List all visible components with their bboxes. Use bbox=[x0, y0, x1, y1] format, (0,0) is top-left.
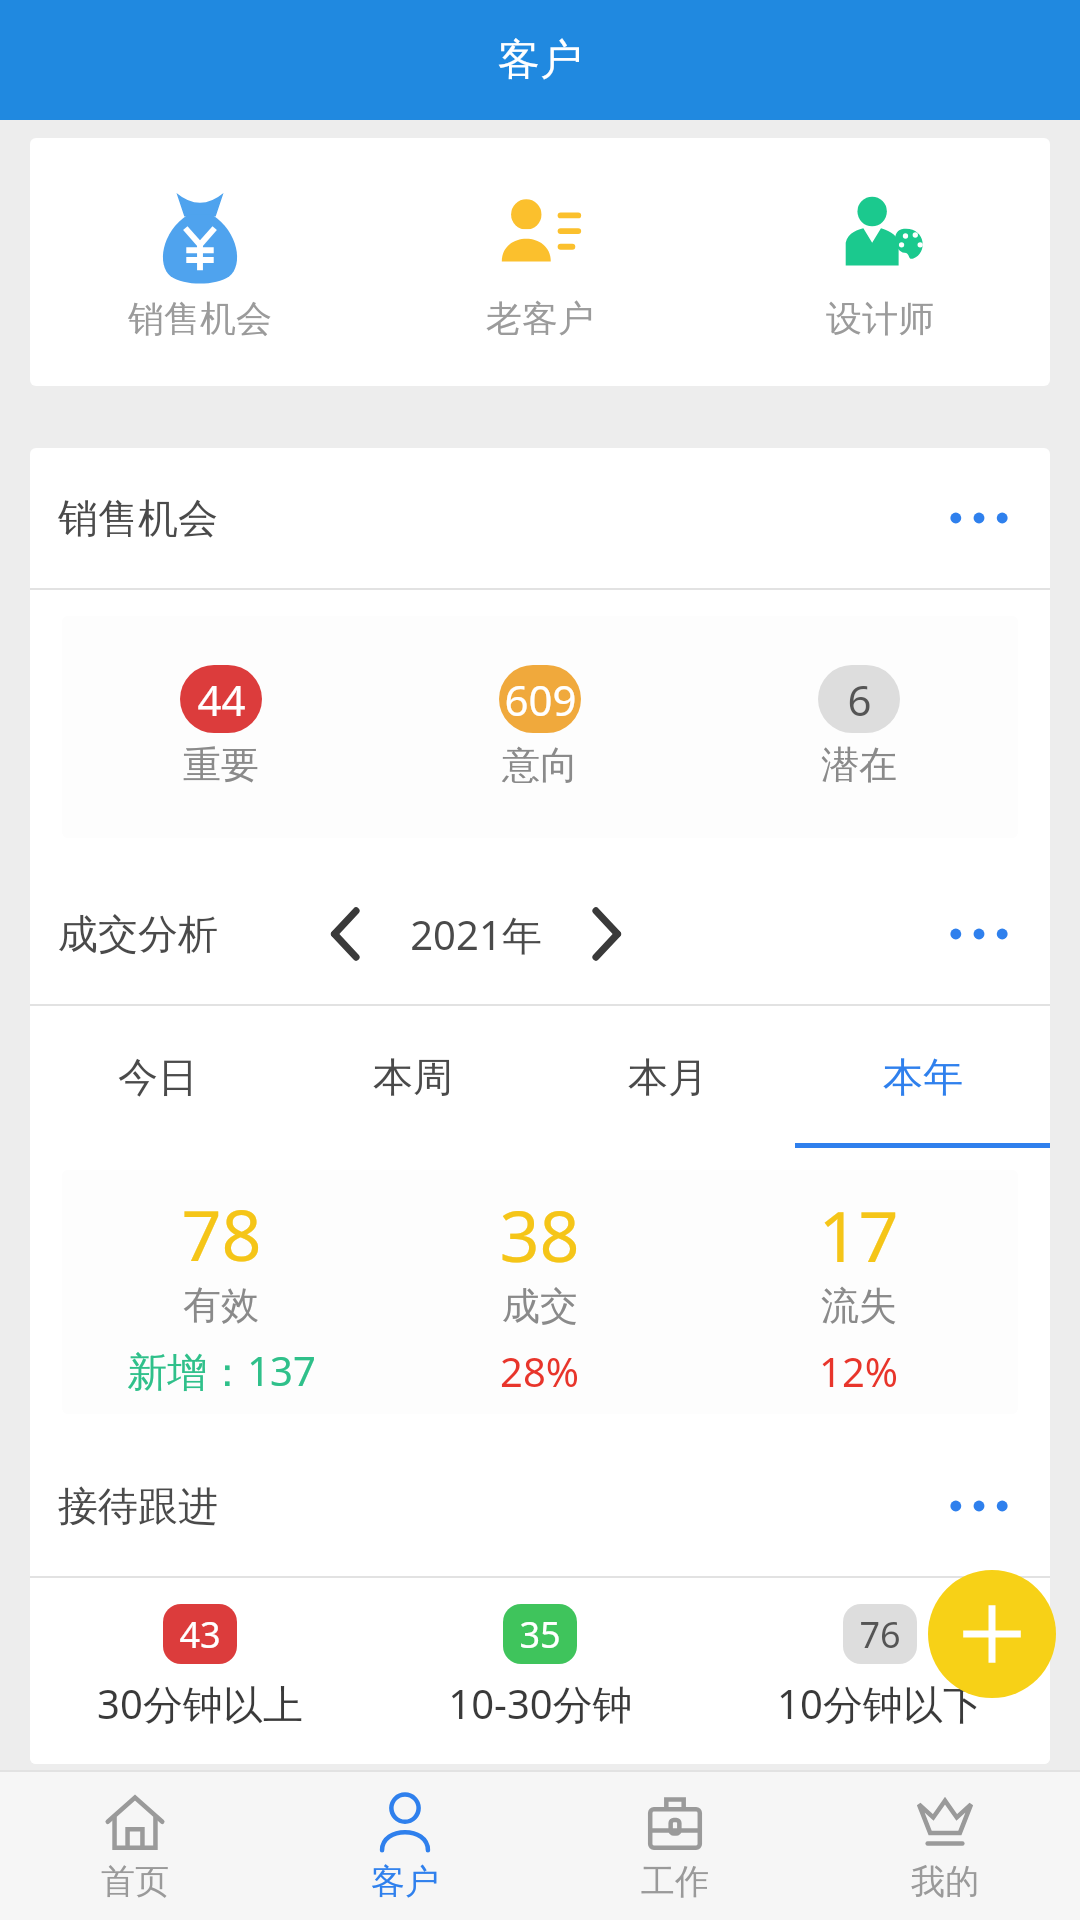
staticText: 30分钟以上 bbox=[97, 1676, 303, 1731]
staticText: 本年 bbox=[883, 1052, 963, 1102]
button[interactable]: 首页 bbox=[0, 1772, 270, 1920]
button[interactable]: 销售机会 bbox=[30, 448, 1050, 588]
button[interactable]: 更多 bbox=[936, 487, 1022, 549]
staticText: 2021年 bbox=[410, 907, 542, 962]
button[interactable]: 76 bbox=[710, 1604, 1050, 1731]
staticText: 成交 bbox=[502, 1282, 578, 1330]
button[interactable]: 609 bbox=[380, 665, 699, 789]
staticText: 本月 bbox=[628, 1052, 708, 1102]
staticText: 设计师 bbox=[826, 296, 934, 341]
staticText: 我的 bbox=[911, 1860, 979, 1903]
staticText: 重要 bbox=[183, 741, 259, 789]
staticText: 首页 bbox=[101, 1860, 169, 1903]
button[interactable]: 更多 bbox=[936, 1475, 1022, 1537]
staticText: 78 bbox=[181, 1186, 262, 1281]
staticText: 6 bbox=[847, 671, 872, 728]
button[interactable]: 43 bbox=[30, 1604, 370, 1731]
button[interactable]: 下一年 bbox=[570, 898, 642, 970]
button[interactable]: 本年 bbox=[795, 1006, 1050, 1148]
button[interactable]: 客户 bbox=[270, 1772, 540, 1920]
button[interactable]: 更多 bbox=[936, 903, 1022, 965]
staticText: 44 bbox=[197, 671, 246, 728]
button[interactable]: 78 bbox=[62, 1186, 380, 1398]
button[interactable]: 接待跟进 bbox=[30, 1436, 1050, 1576]
staticText: 成交分析 bbox=[58, 909, 218, 959]
staticText: 今日 bbox=[118, 1052, 198, 1102]
staticText: 流失 bbox=[821, 1282, 897, 1330]
staticText: 有效 bbox=[183, 1281, 259, 1329]
button[interactable]: 销售机会 bbox=[30, 138, 370, 386]
staticText: 17 bbox=[818, 1187, 899, 1282]
button[interactable]: 我的 bbox=[810, 1772, 1080, 1920]
staticText: 28% bbox=[500, 1344, 579, 1398]
button[interactable]: 老客户 bbox=[370, 138, 710, 386]
staticText: 客户 bbox=[371, 1860, 439, 1903]
staticText: 10-30分钟 bbox=[448, 1676, 633, 1731]
staticText: 接待跟进 bbox=[58, 1481, 218, 1531]
button[interactable]: 44 bbox=[62, 665, 380, 789]
staticText: 12% bbox=[819, 1344, 898, 1398]
staticText: 10分钟以下 bbox=[777, 1676, 983, 1731]
button[interactable]: 今日 bbox=[30, 1006, 285, 1148]
staticText: 43 bbox=[179, 1610, 221, 1659]
staticText: 工作 bbox=[641, 1860, 709, 1903]
button[interactable]: 17 bbox=[699, 1187, 1018, 1398]
button[interactable]: 上一年 bbox=[310, 898, 382, 970]
button[interactable]: 本月 bbox=[540, 1006, 795, 1148]
button[interactable]: 工作 bbox=[540, 1772, 810, 1920]
staticText: 意向 bbox=[502, 741, 578, 789]
staticText: 76 bbox=[859, 1610, 901, 1659]
button[interactable]: 35 bbox=[370, 1604, 710, 1731]
staticText: 销售机会 bbox=[58, 493, 218, 543]
staticText: 销售机会 bbox=[128, 296, 272, 341]
staticText: 38 bbox=[499, 1187, 580, 1282]
button[interactable]: 6 bbox=[699, 665, 1018, 789]
staticText: 新增：137 bbox=[127, 1343, 316, 1398]
button[interactable]: 38 bbox=[380, 1187, 699, 1398]
button[interactable]: 添加 bbox=[928, 1570, 1056, 1698]
staticText: 老客户 bbox=[486, 296, 594, 341]
button[interactable]: 设计师 bbox=[710, 138, 1050, 386]
staticText: 客户 bbox=[498, 34, 582, 87]
staticText: 609 bbox=[504, 671, 577, 728]
staticText: 潜在 bbox=[821, 741, 897, 789]
staticText: 35 bbox=[519, 1610, 561, 1659]
button[interactable]: 本周 bbox=[285, 1006, 540, 1148]
staticText: 本周 bbox=[373, 1052, 453, 1102]
